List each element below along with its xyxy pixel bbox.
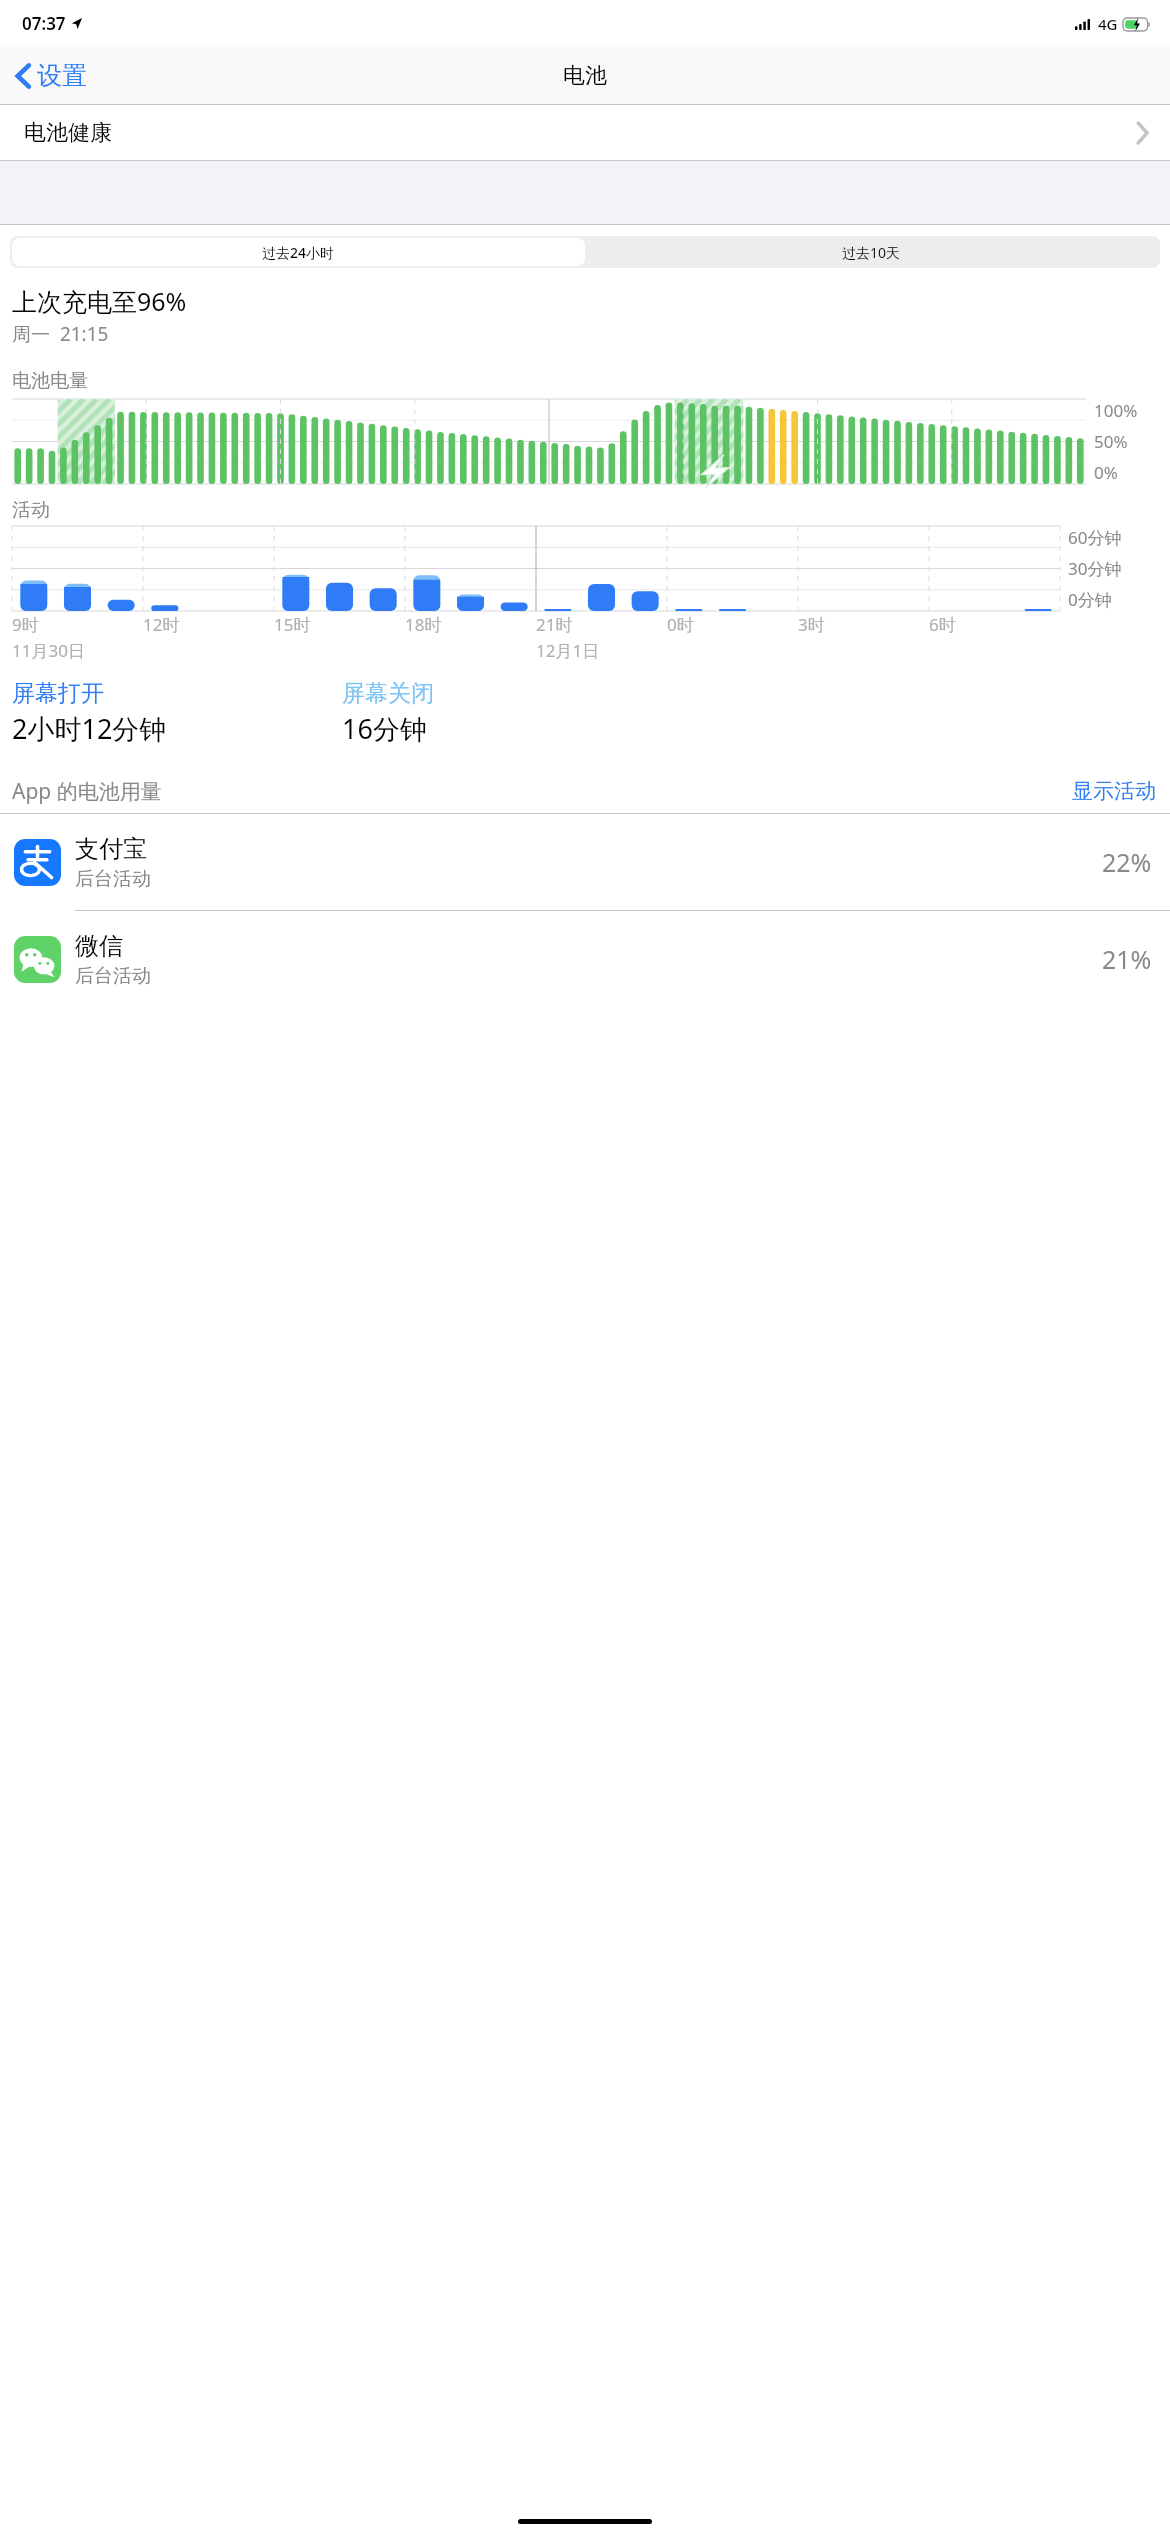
staticText: 0分钟 (1068, 588, 1112, 611)
staticText: 07:37 (22, 12, 66, 35)
staticText: 支付宝 (75, 834, 147, 864)
staticText: 0% (1094, 461, 1118, 484)
staticText: 30分钟 (1068, 557, 1122, 580)
button[interactable]: 显示活动 (1058, 772, 1170, 810)
staticText: 2小时12分钟 (12, 710, 167, 747)
staticText: 电池 (563, 62, 607, 90)
staticText: 电池健康 (24, 119, 112, 147)
staticText: 活动 (12, 498, 50, 522)
button[interactable]: 支付宝 (0, 814, 1170, 910)
staticText: 过去24小时 (262, 243, 335, 262)
staticText: 100% (1094, 399, 1138, 422)
button[interactable]: 过去24小时 (12, 238, 585, 266)
staticText: 21% (1102, 942, 1152, 976)
button[interactable]: 电池健康 (0, 105, 1170, 160)
staticText: 4G (1098, 14, 1118, 34)
staticText: 上次充电至96% (12, 284, 187, 318)
staticText: 0时 (667, 613, 694, 636)
staticText: 21时 (536, 613, 573, 636)
staticText: App 的电池用量 (12, 777, 162, 806)
staticText: 50% (1094, 430, 1128, 453)
staticText: 22% (1102, 845, 1152, 879)
staticText: 6时 (929, 613, 956, 636)
button[interactable]: 微信 (0, 911, 1170, 1007)
staticText: 微信 (75, 931, 123, 961)
staticText: 18时 (405, 613, 442, 636)
staticText: 后台活动 (75, 867, 151, 891)
staticText: 60分钟 (1068, 526, 1122, 549)
staticText: 周一 21:15 (12, 321, 109, 347)
staticText: 12月1日 (536, 639, 600, 662)
staticText: 电池电量 (12, 369, 88, 393)
staticText: 屏幕关闭 (342, 679, 434, 708)
staticText: 过去10天 (842, 243, 901, 262)
staticText: 3时 (798, 613, 825, 636)
staticText: 设置 (37, 60, 87, 91)
staticText: 15时 (274, 613, 311, 636)
staticText: 12时 (143, 613, 180, 636)
staticText: 显示活动 (1072, 778, 1156, 804)
button[interactable]: 过去10天 (585, 238, 1158, 266)
staticText: 11月30日 (12, 639, 85, 662)
staticText: 16分钟 (342, 710, 427, 747)
staticText: 后台活动 (75, 964, 151, 988)
staticText: 屏幕打开 (12, 679, 104, 708)
staticText: 9时 (12, 613, 39, 636)
button[interactable]: 设置 (10, 54, 93, 97)
